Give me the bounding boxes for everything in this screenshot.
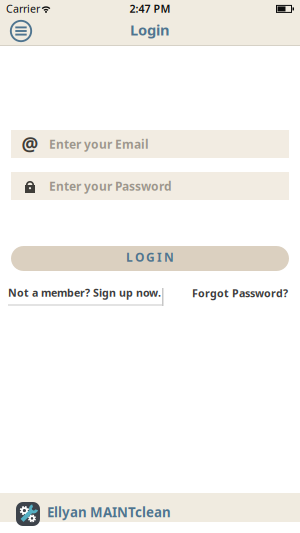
staticText: Carrier <box>6 1 40 16</box>
staticText: Enter your Email <box>49 136 149 152</box>
button[interactable] <box>6 16 36 45</box>
staticText: Forgot Password? <box>192 286 288 300</box>
button[interactable]: Not a member? Sign up now. <box>0 287 230 307</box>
staticText: Enter your Password <box>49 178 172 194</box>
button[interactable]: Forgot Password? <box>192 286 288 300</box>
staticText: L O G I N <box>126 249 174 265</box>
staticText: 2:47 PM <box>129 1 170 16</box>
staticText: @ <box>21 132 38 156</box>
staticText: Not a member? Sign up now. <box>8 285 161 300</box>
button[interactable]: Ellyan MAINTclean <box>16 502 171 526</box>
staticText: Ellyan MAINTclean <box>47 503 171 521</box>
button[interactable]: Enter your Password <box>11 172 289 200</box>
button[interactable]: @ <box>11 130 289 158</box>
button[interactable]: L O G I N <box>11 246 289 271</box>
staticText: Login <box>130 20 170 39</box>
